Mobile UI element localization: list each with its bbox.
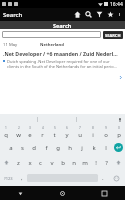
button[interactable]: x bbox=[24, 155, 35, 170]
staticText: ? bbox=[105, 159, 108, 167]
staticText: d bbox=[32, 144, 36, 152]
staticText: k bbox=[92, 144, 96, 152]
button[interactable]: m bbox=[79, 155, 90, 170]
staticText: j bbox=[81, 144, 83, 152]
staticText: 6 bbox=[66, 126, 68, 130]
staticText: Search bbox=[53, 22, 72, 29]
staticText: c bbox=[39, 159, 42, 167]
staticText: a bbox=[9, 144, 13, 152]
staticText: h bbox=[68, 144, 72, 152]
button[interactable]: 5 bbox=[48, 125, 60, 140]
button[interactable]: Shift bbox=[0, 155, 13, 170]
button[interactable]: More options bbox=[116, 8, 122, 21]
staticText: ?123 bbox=[4, 176, 13, 181]
button[interactable]: d bbox=[28, 140, 40, 155]
staticText: 16:44 bbox=[110, 1, 123, 8]
button[interactable]: , bbox=[17, 170, 27, 186]
staticText: .Net Developer / +6 maanden / Zuid Neder… bbox=[3, 50, 118, 57]
staticText: e bbox=[28, 131, 32, 139]
staticText: 1 bbox=[5, 126, 7, 130]
staticText: 4 bbox=[42, 126, 44, 130]
staticText: 3 bbox=[29, 126, 31, 130]
staticText: u bbox=[78, 131, 82, 139]
button[interactable]: g bbox=[52, 140, 64, 155]
staticText: 9 bbox=[105, 126, 107, 130]
button[interactable]: b bbox=[57, 155, 68, 170]
staticText: SEARCH bbox=[105, 33, 121, 38]
staticText: i bbox=[92, 131, 94, 139]
button[interactable]: Search bbox=[83, 8, 94, 21]
staticText: l bbox=[105, 144, 107, 152]
button[interactable]: Filter bbox=[94, 8, 105, 21]
staticText: w bbox=[16, 131, 21, 139]
button[interactable]: 0 bbox=[112, 125, 125, 140]
staticText: o bbox=[104, 131, 108, 139]
staticText: n bbox=[72, 159, 76, 167]
button[interactable]: Shift bbox=[112, 155, 125, 170]
button[interactable]: a bbox=[5, 140, 16, 155]
staticText: p bbox=[117, 131, 121, 139]
button[interactable]: Voice input bbox=[115, 114, 125, 125]
staticText: , bbox=[21, 174, 23, 182]
button[interactable]: n bbox=[68, 155, 79, 170]
staticText: b bbox=[61, 159, 65, 167]
button[interactable]: f bbox=[40, 140, 52, 155]
staticText: 2 bbox=[18, 126, 20, 130]
staticText: 11 May bbox=[3, 42, 18, 48]
button[interactable]: 11 May bbox=[0, 40, 125, 114]
staticText: ! bbox=[95, 159, 97, 167]
button[interactable]: Home bbox=[41, 186, 83, 200]
staticText: 8 bbox=[92, 126, 94, 130]
staticText: t bbox=[53, 131, 56, 139]
button[interactable]: ! bbox=[90, 155, 101, 170]
staticText: g bbox=[56, 144, 60, 152]
button[interactable]: j bbox=[76, 140, 88, 155]
button[interactable]: Favourites bbox=[105, 8, 116, 21]
button[interactable]: s bbox=[16, 140, 28, 155]
staticText: m bbox=[82, 159, 88, 167]
staticText: x bbox=[28, 159, 32, 167]
staticText: r bbox=[41, 131, 44, 139]
staticText: 5 bbox=[54, 126, 56, 130]
button[interactable]: k bbox=[88, 140, 100, 155]
button[interactable]: l bbox=[100, 140, 112, 155]
button[interactable]: h bbox=[64, 140, 76, 155]
button[interactable]: 3 bbox=[24, 125, 36, 140]
staticText: s bbox=[21, 144, 24, 152]
button[interactable]: 4 bbox=[36, 125, 48, 140]
button[interactable] bbox=[2, 31, 101, 38]
button[interactable]: Enter bbox=[112, 140, 125, 155]
staticText: f bbox=[45, 144, 48, 152]
button[interactable]: Home bbox=[72, 8, 83, 21]
staticText: Search bbox=[3, 11, 23, 19]
staticText: v bbox=[50, 159, 54, 167]
button[interactable]: . bbox=[98, 170, 108, 186]
button[interactable]: SEARCH bbox=[103, 31, 123, 39]
button[interactable]: 8 bbox=[86, 125, 99, 140]
button[interactable]: v bbox=[46, 155, 57, 170]
button[interactable]: c bbox=[35, 155, 46, 170]
staticText: y bbox=[65, 131, 69, 139]
staticText: 7 bbox=[79, 126, 81, 130]
button[interactable]: ?123 bbox=[0, 170, 17, 186]
button[interactable]: 7 bbox=[73, 125, 86, 140]
button[interactable]: Emoji bbox=[108, 170, 125, 186]
button[interactable]: 1 bbox=[0, 125, 12, 140]
button[interactable]: Recent apps bbox=[83, 186, 125, 200]
button[interactable]: ? bbox=[101, 155, 112, 170]
staticText: Dutch speaking .Net Developer required f… bbox=[7, 59, 118, 69]
staticText: Netherland bbox=[40, 42, 64, 48]
button[interactable]: Back bbox=[0, 186, 41, 200]
staticText: . bbox=[102, 174, 104, 182]
button[interactable]: 9 bbox=[99, 125, 112, 140]
button[interactable]: 2 bbox=[12, 125, 24, 140]
staticText: 0 bbox=[118, 126, 120, 130]
staticText: z bbox=[17, 159, 20, 167]
staticText: q bbox=[4, 131, 8, 139]
button[interactable]: 6 bbox=[60, 125, 73, 140]
button[interactable]: z bbox=[13, 155, 24, 170]
